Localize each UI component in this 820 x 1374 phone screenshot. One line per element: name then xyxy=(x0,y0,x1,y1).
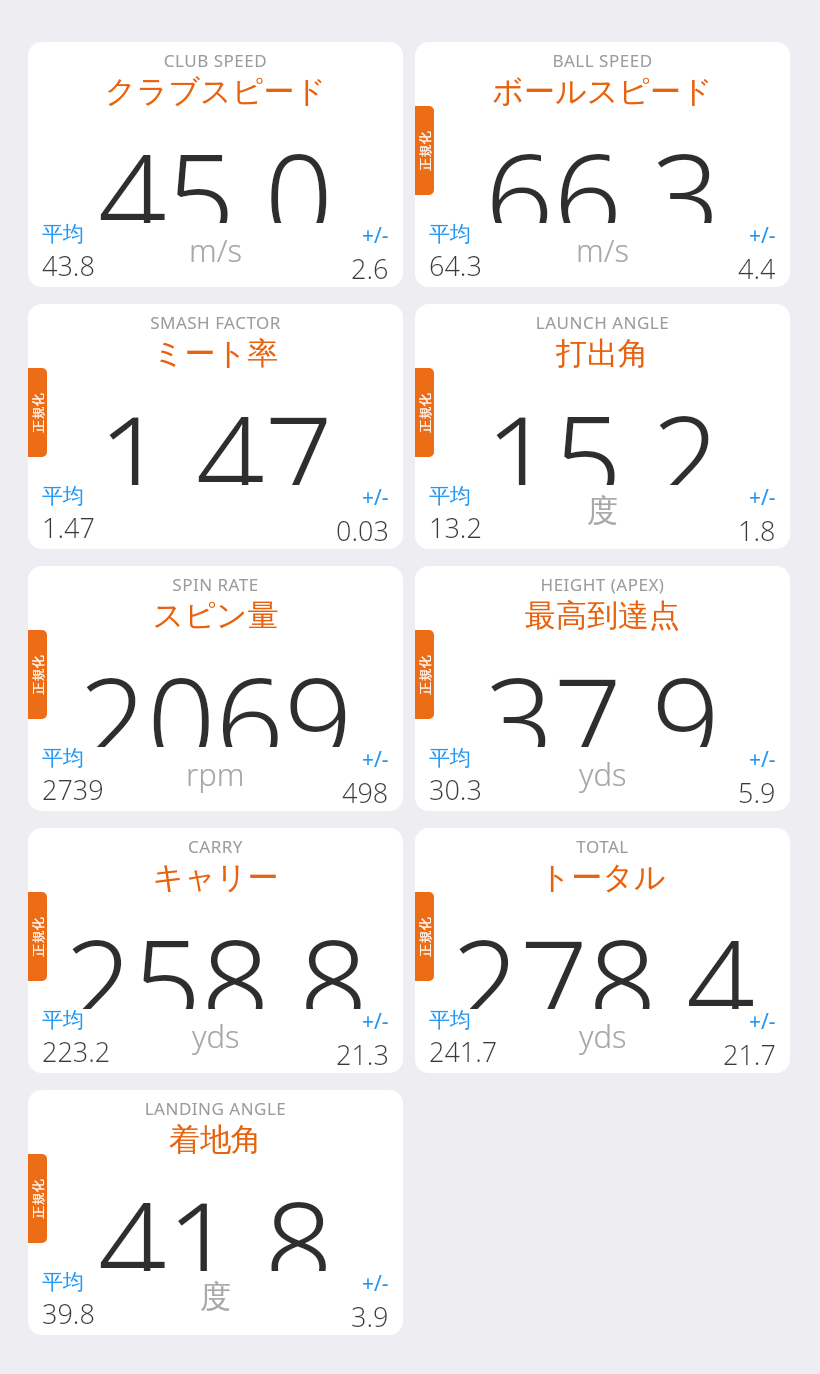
staticText: CLUB SPEED xyxy=(28,49,403,72)
staticText: 正規化 xyxy=(29,655,45,694)
button[interactable]: 正規化 xyxy=(415,892,434,981)
staticText: 打出角 xyxy=(415,334,790,373)
staticText: 度 xyxy=(587,491,618,530)
staticText: +/- xyxy=(749,221,776,250)
staticText: 平均 xyxy=(429,483,471,509)
button[interactable]: CLUB SPEED xyxy=(28,42,403,287)
staticText: 着地角 xyxy=(28,1120,403,1159)
staticText: 正規化 xyxy=(416,917,432,956)
staticText: yds xyxy=(579,753,627,795)
button[interactable]: 正規化 xyxy=(28,892,47,981)
staticText: 258.8 xyxy=(64,899,368,1009)
staticText: 498 xyxy=(342,774,389,811)
button[interactable]: SMASH FACTOR xyxy=(28,304,403,549)
staticText: 3.9 xyxy=(351,1298,389,1335)
button[interactable]: 正規化 xyxy=(415,630,434,719)
staticText: 0.03 xyxy=(336,512,389,549)
staticText: 30.3 xyxy=(429,771,482,808)
staticText: キャリー xyxy=(28,858,403,897)
staticText: 平均 xyxy=(42,483,84,509)
staticText: 平均 xyxy=(42,1269,84,1295)
staticText: スピン量 xyxy=(28,596,403,635)
staticText: +/- xyxy=(749,745,776,774)
staticText: 正規化 xyxy=(29,393,45,432)
staticText: 41.8 xyxy=(98,1161,333,1271)
staticText: BALL SPEED xyxy=(415,49,790,72)
button[interactable]: LANDING ANGLE xyxy=(28,1090,403,1335)
staticText: m/s xyxy=(189,229,242,271)
staticText: 21.3 xyxy=(336,1036,389,1073)
staticText: +/- xyxy=(362,1007,389,1036)
staticText: +/- xyxy=(749,483,776,512)
staticText: +/- xyxy=(749,1007,776,1036)
button[interactable]: 正規化 xyxy=(28,630,47,719)
staticText: 正規化 xyxy=(416,131,432,170)
button[interactable]: CARRY xyxy=(28,828,403,1073)
staticText: 度 xyxy=(200,1277,231,1316)
staticText: 43.8 xyxy=(42,247,95,284)
staticText: クラブスピード xyxy=(28,72,403,111)
staticText: TOTAL xyxy=(415,835,790,858)
staticText: 223.2 xyxy=(42,1033,111,1070)
button[interactable]: 正規化 xyxy=(415,368,434,457)
staticText: 37.9 xyxy=(485,637,720,747)
staticText: 最高到達点 xyxy=(415,596,790,635)
staticText: 正規化 xyxy=(416,655,432,694)
staticText: 45.0 xyxy=(98,113,333,223)
staticText: +/- xyxy=(362,483,389,512)
staticText: 5.9 xyxy=(738,774,776,811)
staticText: +/- xyxy=(362,221,389,250)
staticText: rpm xyxy=(186,753,245,795)
staticText: 平均 xyxy=(429,221,471,247)
staticText: SPIN RATE xyxy=(28,573,403,596)
staticText: 13.2 xyxy=(429,509,482,546)
staticText: 平均 xyxy=(42,1007,84,1033)
button[interactable]: 正規化 xyxy=(28,1154,47,1243)
staticText: 平均 xyxy=(429,745,471,771)
staticText: CARRY xyxy=(28,835,403,858)
staticText: 4.4 xyxy=(738,250,776,287)
staticText: 1.47 xyxy=(42,509,95,546)
staticText: 平均 xyxy=(42,221,84,247)
staticText: 278.4 xyxy=(451,899,755,1009)
staticText: ボールスピード xyxy=(415,72,790,111)
staticText: LAUNCH ANGLE xyxy=(415,311,790,334)
staticText: 15.2 xyxy=(485,375,720,485)
staticText: yds xyxy=(192,1015,240,1057)
button[interactable]: BALL SPEED xyxy=(415,42,790,287)
button[interactable]: 正規化 xyxy=(415,106,434,195)
button[interactable]: 正規化 xyxy=(28,368,47,457)
staticText: 平均 xyxy=(429,1007,471,1033)
staticText: +/- xyxy=(362,1269,389,1298)
staticText: ミート率 xyxy=(28,334,403,373)
staticText: HEIGHT (APEX) xyxy=(415,573,790,596)
staticText: 2.6 xyxy=(351,250,389,287)
button[interactable]: LAUNCH ANGLE xyxy=(415,304,790,549)
staticText: 66.3 xyxy=(485,113,720,223)
staticText: 2069 xyxy=(78,637,353,747)
button[interactable]: TOTAL xyxy=(415,828,790,1073)
staticText: SMASH FACTOR xyxy=(28,311,403,334)
staticText: 2739 xyxy=(42,771,104,808)
staticText: 正規化 xyxy=(29,917,45,956)
staticText: 1.8 xyxy=(738,512,776,549)
staticText: LANDING ANGLE xyxy=(28,1097,403,1120)
staticText: 正規化 xyxy=(29,1179,45,1218)
staticText: トータル xyxy=(415,858,790,897)
button[interactable]: SPIN RATE xyxy=(28,566,403,811)
staticText: 241.7 xyxy=(429,1033,498,1070)
staticText: m/s xyxy=(576,229,629,271)
staticText: 64.3 xyxy=(429,247,482,284)
staticText: 正規化 xyxy=(416,393,432,432)
staticText: 1.47 xyxy=(98,375,333,485)
staticText: 平均 xyxy=(42,745,84,771)
staticText: 39.8 xyxy=(42,1295,95,1332)
staticText: yds xyxy=(579,1015,627,1057)
staticText: +/- xyxy=(362,745,389,774)
staticText: 21.7 xyxy=(723,1036,776,1073)
button[interactable]: HEIGHT (APEX) xyxy=(415,566,790,811)
